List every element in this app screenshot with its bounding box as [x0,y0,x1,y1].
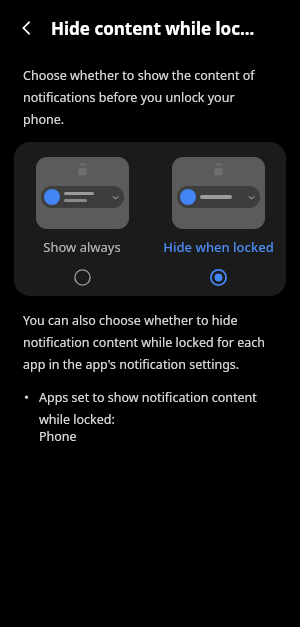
button[interactable]: Hide when locked [205,264,231,290]
button[interactable]: Show always [14,142,150,290]
staticText: Choose whether to show the content of no… [23,67,278,128]
staticText: Apps set to show notification content wh… [39,389,280,428]
staticText: Show always [43,238,121,256]
button[interactable]: Show always [69,264,95,290]
button[interactable]: Back [10,11,44,45]
staticText: Hide when locked [163,238,274,256]
staticText: Hide content while loc... [51,17,255,40]
staticText: You can also choose whether to hide noti… [23,312,278,373]
staticText: Phone [39,428,77,445]
button[interactable]: Hide when locked [150,142,286,290]
